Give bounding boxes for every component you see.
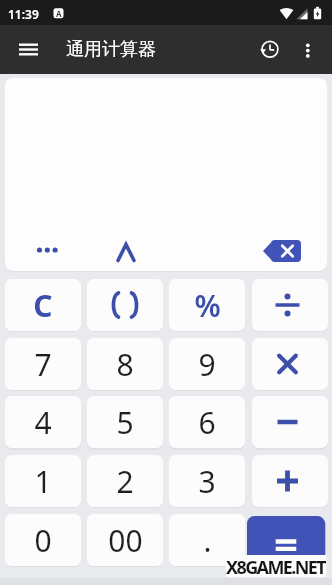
button[interactable] bbox=[253, 34, 283, 64]
button[interactable]: 7 bbox=[5, 338, 81, 390]
staticText: 2 bbox=[116, 461, 134, 502]
button[interactable]: 4 bbox=[5, 396, 81, 448]
button[interactable] bbox=[252, 455, 328, 507]
button[interactable]: 00 bbox=[87, 514, 163, 566]
staticText: 通用计算器 bbox=[66, 38, 156, 61]
staticText: X8GAME.NET bbox=[226, 555, 326, 577]
button[interactable] bbox=[12, 35, 46, 64]
button[interactable] bbox=[87, 279, 163, 331]
staticText: 4 bbox=[34, 402, 52, 443]
button[interactable] bbox=[27, 238, 77, 271]
staticText: 11:39 bbox=[8, 6, 39, 22]
staticText: 7 bbox=[34, 344, 52, 385]
button[interactable] bbox=[105, 230, 147, 271]
button[interactable]: 8 bbox=[87, 338, 163, 390]
button[interactable]: % bbox=[169, 279, 245, 331]
button[interactable]: 6 bbox=[169, 396, 245, 448]
button[interactable] bbox=[252, 279, 328, 331]
button[interactable]: . bbox=[169, 514, 245, 566]
button[interactable]: 9 bbox=[169, 338, 245, 390]
staticText: 6 bbox=[198, 402, 216, 443]
button[interactable] bbox=[258, 233, 308, 269]
button[interactable] bbox=[247, 516, 325, 571]
staticText: 8 bbox=[116, 344, 134, 385]
button[interactable]: 5 bbox=[87, 396, 163, 448]
staticText: . bbox=[203, 520, 212, 561]
staticText: 1 bbox=[34, 461, 52, 502]
staticText: C bbox=[33, 285, 53, 326]
button[interactable]: 2 bbox=[87, 455, 163, 507]
staticText: 00 bbox=[108, 520, 143, 561]
staticText: 9 bbox=[198, 344, 216, 385]
staticText: A bbox=[56, 8, 62, 19]
button[interactable] bbox=[252, 396, 328, 448]
button[interactable]: 3 bbox=[169, 455, 245, 507]
button[interactable] bbox=[252, 338, 328, 390]
button[interactable] bbox=[292, 34, 322, 64]
button[interactable]: 0 bbox=[5, 514, 81, 566]
staticText: 0 bbox=[34, 520, 52, 561]
staticText: % bbox=[194, 285, 221, 326]
staticText: 5 bbox=[116, 402, 134, 443]
staticText: 3 bbox=[198, 461, 216, 502]
button[interactable]: C bbox=[5, 279, 81, 331]
button[interactable]: 1 bbox=[5, 455, 81, 507]
